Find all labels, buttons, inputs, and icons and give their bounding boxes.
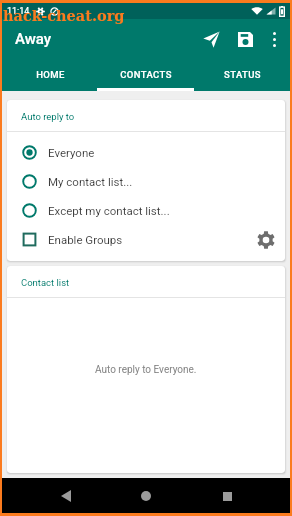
staticText: Auto reply to (21, 111, 75, 122)
button[interactable]: Save (230, 24, 260, 54)
staticText: 11:14 (7, 6, 30, 17)
staticText: CONTACTS (120, 69, 172, 80)
staticText: Enable Groups (48, 233, 123, 246)
button[interactable]: Group settings (254, 228, 278, 252)
button[interactable]: My contact list... (7, 167, 285, 196)
button[interactable]: CONTACTS (98, 59, 194, 91)
staticText: STATUS (224, 69, 261, 80)
staticText: Contact list (21, 277, 70, 288)
button[interactable]: Everyone (7, 138, 285, 167)
button[interactable]: Send (196, 24, 226, 54)
button[interactable]: Except my contact list... (7, 196, 285, 225)
staticText: Auto reply to Everyone. (95, 364, 197, 376)
button[interactable]: HOME (2, 59, 98, 91)
staticText: HOME (36, 69, 65, 80)
button[interactable]: STATUS (194, 59, 290, 91)
button[interactable]: More options (261, 26, 287, 52)
staticText: Everyone (48, 146, 95, 159)
staticText: hack-cheat.org (3, 7, 125, 24)
staticText: Except my contact list... (48, 204, 170, 217)
button[interactable]: Enable Groups (7, 225, 285, 254)
button[interactable]: Recents (210, 479, 244, 513)
button[interactable]: Home (129, 479, 163, 513)
staticText: Away (15, 30, 52, 48)
button[interactable]: Back (49, 479, 83, 513)
staticText: My contact list... (48, 175, 133, 188)
